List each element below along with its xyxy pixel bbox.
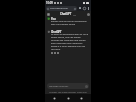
- staticText: Explain how to print all documents with …: [51, 20, 89, 26]
- button[interactable]: Account: [86, 12, 90, 16]
- staticText: To print all documents with an ASCII gra…: [51, 33, 89, 51]
- staticText: Message ChatGPT: [49, 85, 69, 88]
- button[interactable]: Recents: [78, 95, 85, 102]
- staticText: 4o: [73, 13, 76, 16]
- staticText: 10:09: [46, 1, 53, 5]
- staticText: ChatGPT: [60, 12, 72, 16]
- button[interactable]: Share: [78, 6, 82, 10]
- staticText: ChatGPT can make mistakes. Check info: [49, 91, 87, 94]
- button[interactable]: Menu: [46, 12, 50, 16]
- staticText: ChatGPT: [51, 30, 62, 33]
- button[interactable]: Tabs: [82, 6, 86, 10]
- staticText: chat.openai.com: [50, 7, 68, 10]
- button[interactable]: chat.openai.com: [46, 6, 77, 11]
- button[interactable]: Home: [65, 95, 72, 102]
- button[interactable]: Message ChatGPT: [47, 83, 89, 89]
- staticText: You: [51, 17, 56, 20]
- button[interactable]: ChatGPT: [60, 12, 76, 16]
- button[interactable]: More options: [86, 6, 90, 10]
- button[interactable]: Back: [51, 95, 58, 102]
